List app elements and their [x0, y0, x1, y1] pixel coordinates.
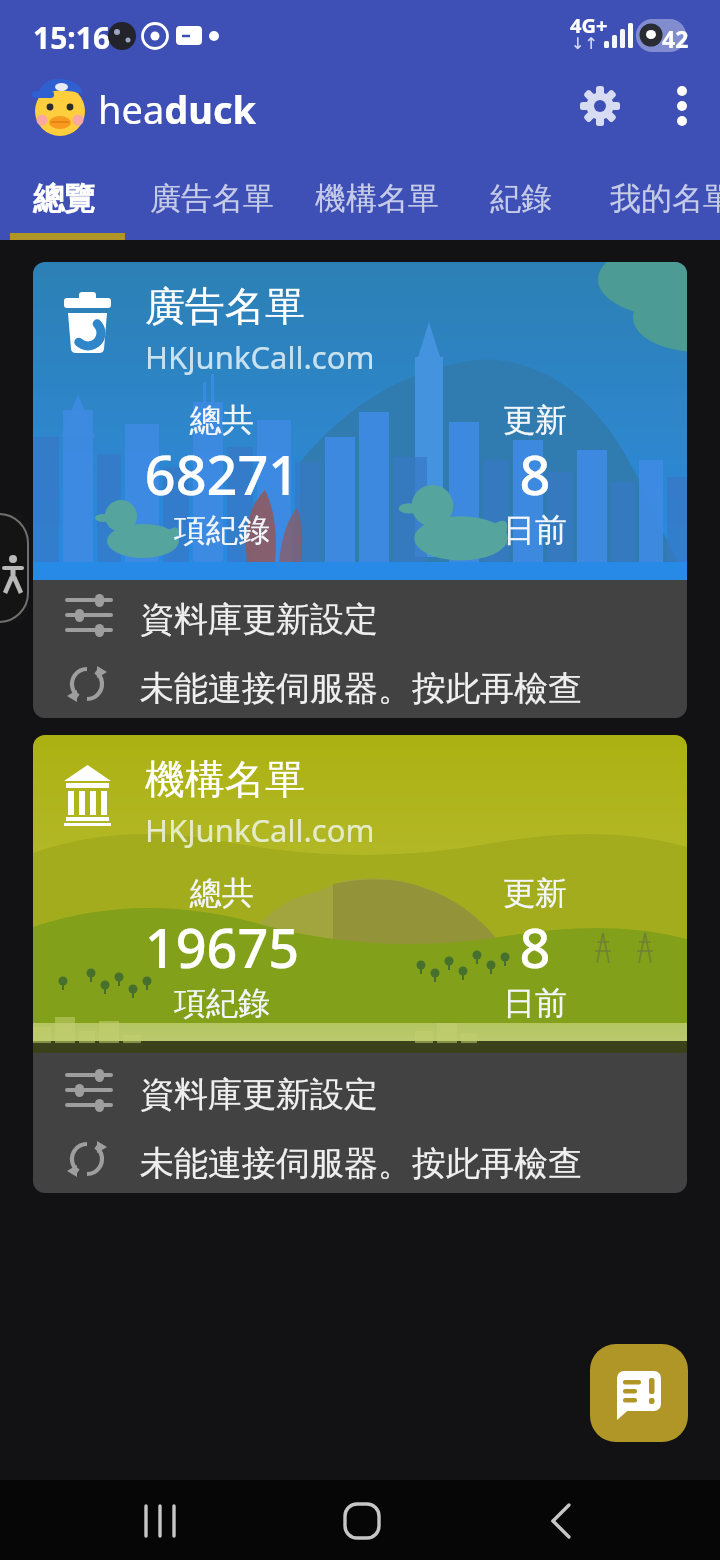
button[interactable] [33, 649, 687, 718]
button[interactable] [0, 160, 135, 240]
button[interactable] [33, 1123, 687, 1193]
staticText: 19675 [122, 910, 322, 984]
staticText: 紀錄 [490, 179, 552, 218]
button[interactable] [540, 1498, 586, 1544]
staticText: HKJunkCall.com [145, 336, 375, 378]
staticText: 項紀錄 [122, 510, 322, 550]
staticText: 日前 [435, 510, 635, 550]
staticText: 機構名單 [315, 179, 439, 218]
staticText: 日前 [435, 983, 635, 1023]
staticText: 未能連接伺服器。按此再檢查 [140, 667, 582, 710]
staticText: 項紀錄 [122, 983, 322, 1023]
button[interactable] [33, 580, 687, 649]
button[interactable] [140, 1498, 186, 1544]
staticText: 總覽 [33, 179, 95, 218]
staticText: 68271 [122, 437, 322, 511]
staticText: 42 [662, 23, 689, 54]
staticText: 4G+ [570, 12, 608, 39]
staticText: 資料庫更新設定 [140, 1073, 378, 1116]
button[interactable] [580, 86, 620, 126]
staticText: 我的名單 [610, 179, 720, 218]
staticText: 機構名單 [145, 754, 305, 804]
staticText: 總共 [122, 400, 322, 440]
staticText: 15:16 [33, 17, 111, 58]
button[interactable] [666, 86, 698, 126]
button[interactable] [33, 1053, 687, 1123]
staticText: 總共 [122, 873, 322, 913]
button[interactable] [340, 1498, 386, 1544]
button[interactable] [590, 1344, 688, 1442]
staticText: 更新 [435, 873, 635, 913]
staticText: 8 [435, 910, 635, 984]
staticText: HKJunkCall.com [145, 809, 375, 851]
staticText: 廣告名單 [145, 281, 305, 331]
staticText: 8 [435, 437, 635, 511]
staticText: 未能連接伺服器。按此再檢查 [140, 1142, 582, 1185]
staticText: headuck [98, 83, 257, 135]
staticText: ↓↑ [571, 34, 598, 53]
staticText: 廣告名單 [150, 179, 274, 218]
staticText: 資料庫更新設定 [140, 598, 378, 641]
staticText: 更新 [435, 400, 635, 440]
